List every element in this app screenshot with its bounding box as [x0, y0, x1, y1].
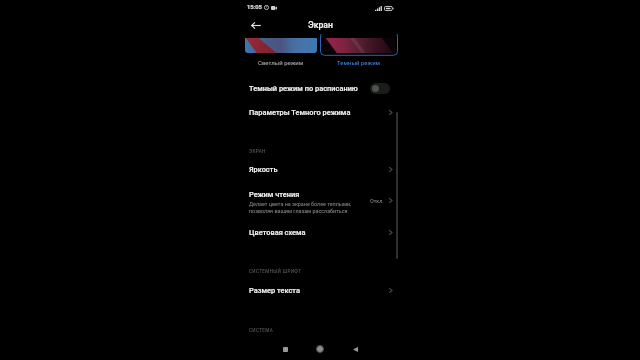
button[interactable]: [320, 38, 398, 53]
button[interactable]: Цветовая схема: [242, 221, 398, 245]
staticText: ЭКРАН: [249, 149, 266, 154]
button[interactable]: [242, 38, 320, 53]
button[interactable]: Яркость: [242, 159, 398, 181]
staticText: Цветовая схема: [249, 228, 306, 237]
staticText: Размер текста: [249, 286, 300, 295]
staticText: Откл.: [370, 198, 384, 204]
button[interactable]: Home: [310, 339, 330, 359]
staticText: 15:05: [247, 4, 262, 11]
staticText: СИСТЕМА: [249, 328, 274, 333]
button[interactable]: Back: [248, 17, 263, 33]
staticText: Яркость: [249, 165, 278, 174]
button[interactable]: Recent apps: [275, 339, 295, 359]
button[interactable]: Toggle dark mode schedule: [370, 83, 390, 94]
staticText: Темный режим: [337, 59, 381, 66]
staticText: СИСТЕМНЫЙ ШРИФТ: [249, 269, 302, 274]
button[interactable]: Темный режим по расписанию: [242, 77, 398, 99]
button[interactable]: Размер текста: [242, 279, 398, 303]
staticText: Режим чтения: [249, 190, 300, 199]
staticText: Делает цвета на экране более теплыми, по…: [249, 201, 352, 214]
staticText: Параметры Темного режима: [249, 108, 351, 117]
button[interactable]: Back: [345, 339, 365, 359]
staticText: Светлый режим: [258, 59, 304, 66]
staticText: Экран: [308, 20, 333, 30]
button[interactable]: Режим чтения: [242, 184, 398, 218]
staticText: Темный режим по расписанию: [249, 84, 370, 93]
button[interactable]: Параметры Темного режима: [242, 101, 398, 125]
